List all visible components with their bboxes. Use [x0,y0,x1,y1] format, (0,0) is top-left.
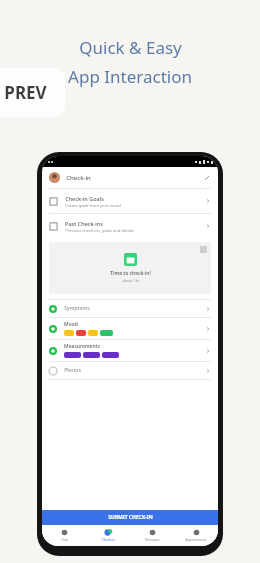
staticText: Check-in [102,538,115,542]
button[interactable]: Photos [42,362,218,379]
button[interactable]: Messages [130,525,174,546]
staticText: SUBMIT CHECK-IN [108,514,153,521]
button[interactable]: Edit [203,174,211,182]
staticText: PREV [4,81,47,104]
staticText: App Interaction [68,65,192,88]
button[interactable]: Check-in [42,167,218,188]
staticText: Check-in [66,174,91,182]
button[interactable]: SUBMIT CHECK-IN [42,510,218,525]
staticText: Measurements [64,343,100,350]
staticText: Chat [61,538,68,542]
staticText: Create goals from your mood [65,203,121,208]
staticText: Quick & Easy [79,36,182,59]
button[interactable]: Check-in [86,525,130,546]
button[interactable]: Past Check-ins [42,214,218,238]
button[interactable]: Measurements [42,340,218,361]
button[interactable]: Symptoms [42,300,218,317]
button[interactable]: PREV [0,68,65,117]
staticText: Mood [64,321,78,328]
staticText: Time to check-in! [110,270,151,277]
button[interactable]: Chat [42,525,86,546]
button[interactable]: Close [49,242,211,294]
staticText: Photos [64,367,81,374]
staticText: Messages [145,538,160,542]
staticText: about 1 hr [122,278,140,283]
staticText: Appointments [185,538,207,542]
button[interactable]: Appointments [174,525,218,546]
staticText: Symptoms [64,305,90,312]
staticText: Check-in Goals [65,195,104,202]
button[interactable]: Check-in Goals [42,189,218,213]
button[interactable]: Mood [42,318,218,339]
staticText: Previous check-ins, goals and details [65,228,134,233]
staticText: Past Check-ins [65,220,103,227]
